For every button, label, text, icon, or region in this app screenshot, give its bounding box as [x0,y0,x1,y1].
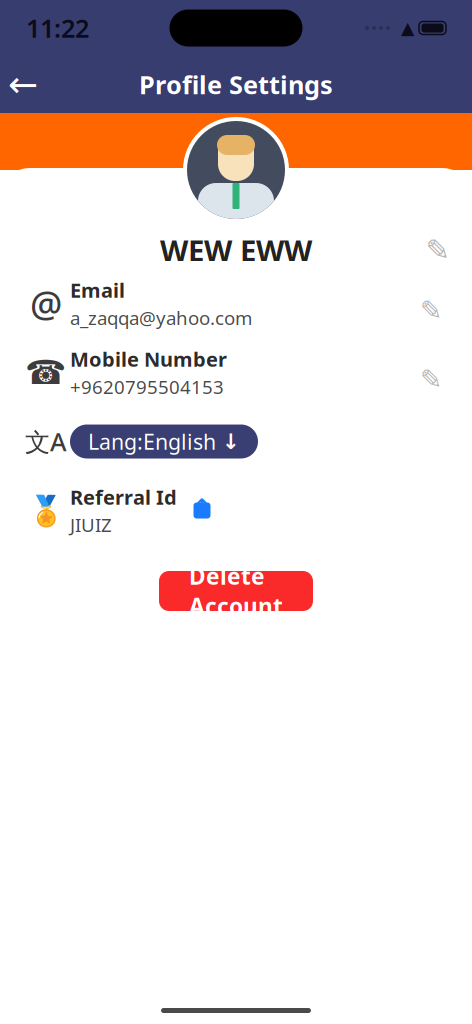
staticText: Email [70,277,125,303]
button[interactable]: @ [12,275,460,332]
staticText: WEW EWW [160,230,312,269]
staticText: Delete Account [189,561,283,621]
staticText: 文A [25,425,67,458]
staticText: a_zaqqa@yahoo.com [70,305,252,330]
staticText: Mobile Number [70,346,227,372]
staticText: ↑ [193,494,211,519]
staticText: JIUIZ [70,512,112,537]
staticText: Lang:English [88,427,216,456]
staticText: ✎ [420,364,442,394]
staticText: 11:22 [26,11,89,45]
staticText: @ [30,280,62,327]
button[interactable]: Share referral id [187,495,217,525]
staticText: ✎ [420,295,442,325]
button[interactable]: Lang:English [70,424,258,458]
staticText: +9620795504153 [70,374,224,399]
staticText: ↓ [222,429,240,454]
button[interactable]: Delete Account [159,571,313,611]
staticText: Referral Id [70,484,177,510]
staticText: ▲ [401,18,414,38]
button[interactable]: Back [0,62,46,106]
staticText: 🏅 [27,494,64,527]
button[interactable]: ☎ [12,344,460,401]
staticText: ← [8,64,38,105]
staticText: ☎ [25,354,67,391]
staticText: Profile Settings [139,68,333,101]
staticText: ✎ [425,233,450,267]
button[interactable]: Edit name [418,232,458,268]
